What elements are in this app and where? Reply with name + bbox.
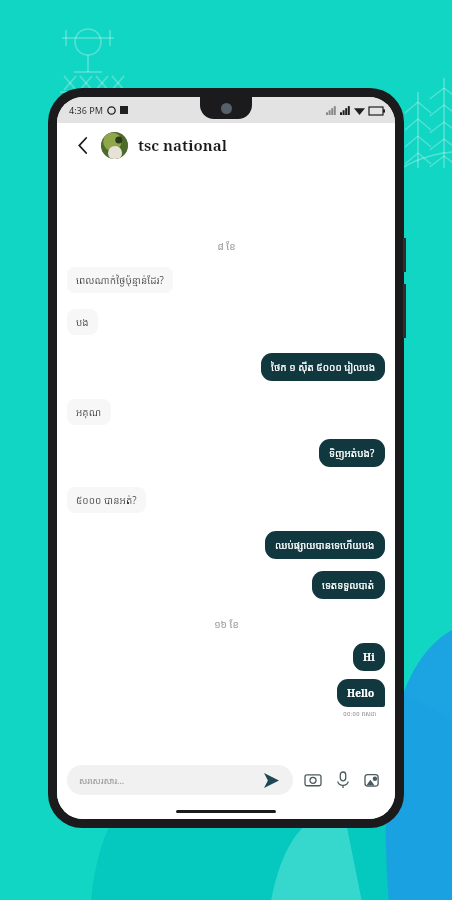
staticText: ១៦ ខែ <box>214 617 239 631</box>
button[interactable]: Hello <box>337 679 385 707</box>
button[interactable]: អគុណ <box>67 399 111 425</box>
button[interactable]: Gallery <box>361 768 385 792</box>
staticText: ៨ ខែ <box>217 239 236 253</box>
button[interactable]: ទេតទទួលបាត់ <box>312 571 385 599</box>
staticText: ៥០០០ បានអត់? <box>76 493 137 507</box>
staticText: សរសេរសារ... <box>79 774 261 786</box>
button[interactable]: Back <box>67 129 99 161</box>
button[interactable]: Hi <box>353 643 385 671</box>
button[interactable]: Voice message <box>331 768 355 792</box>
button[interactable]: tsc national <box>138 135 227 155</box>
staticText: ឈប់ផ្សាយបានទេហើយបង <box>275 538 375 552</box>
staticText: បង <box>76 315 89 329</box>
staticText: ថៃក ១ ស៊ីត ៥០០០ រៀលបង <box>271 360 375 374</box>
staticText: អគុណ <box>76 405 102 419</box>
button[interactable]: ទិញអត់បង? <box>319 439 385 467</box>
staticText: ពេលណាក់ថ្ងៃប៉ុន្មាន់ដែរ? <box>76 273 164 287</box>
button[interactable]: Send <box>261 770 281 790</box>
button[interactable]: Camera <box>301 768 325 792</box>
button[interactable]: ពេលណាក់ថ្ងៃប៉ុន្មាន់ដែរ? <box>67 267 173 293</box>
staticText: ទិញអត់បង? <box>329 446 375 460</box>
button[interactable] <box>101 132 128 159</box>
button[interactable]: ថៃក ១ ស៊ីត ៥០០០ រៀលបង <box>261 353 385 381</box>
button[interactable]: សរសេរសារ... <box>67 765 293 795</box>
button[interactable]: ឈប់ផ្សាយបានទេហើយបង <box>265 531 385 559</box>
button[interactable]: បង <box>67 309 98 335</box>
staticText: Hello <box>347 686 375 700</box>
staticText: 4:36 PM <box>69 104 103 116</box>
staticText: Hi <box>363 650 375 664</box>
staticText: ទេតទទួលបាត់ <box>322 578 375 592</box>
staticText: ០០:០០ ពសដា <box>343 710 377 718</box>
button[interactable]: ៥០០០ បានអត់? <box>67 487 146 513</box>
